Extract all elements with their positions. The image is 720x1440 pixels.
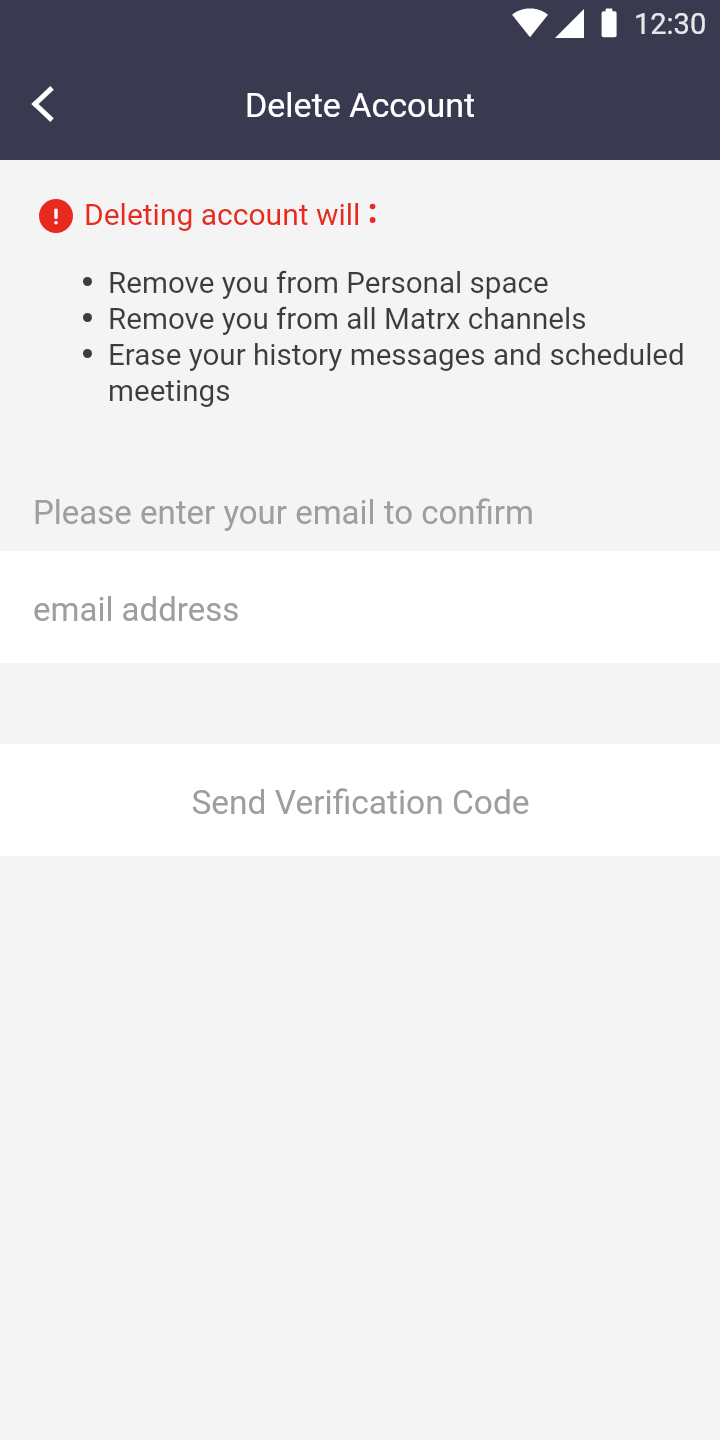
staticText: Delete Account (245, 85, 476, 125)
staticText: Remove you from Personal space (108, 266, 549, 301)
staticText: Remove you from all Matrx channels (108, 302, 587, 337)
staticText: Deleting account will (84, 197, 361, 232)
staticText: 12:30 (634, 7, 707, 41)
staticText: Send Verification Code (191, 783, 530, 822)
staticText: Please enter your email to confirm (33, 493, 534, 532)
button[interactable]: Send Verification Code (0, 744, 720, 856)
button[interactable]: Back (0, 48, 82, 160)
staticText: email address (33, 590, 240, 629)
staticText: Erase your history messages and schedule… (108, 338, 695, 408)
button[interactable]: email address (0, 551, 720, 663)
